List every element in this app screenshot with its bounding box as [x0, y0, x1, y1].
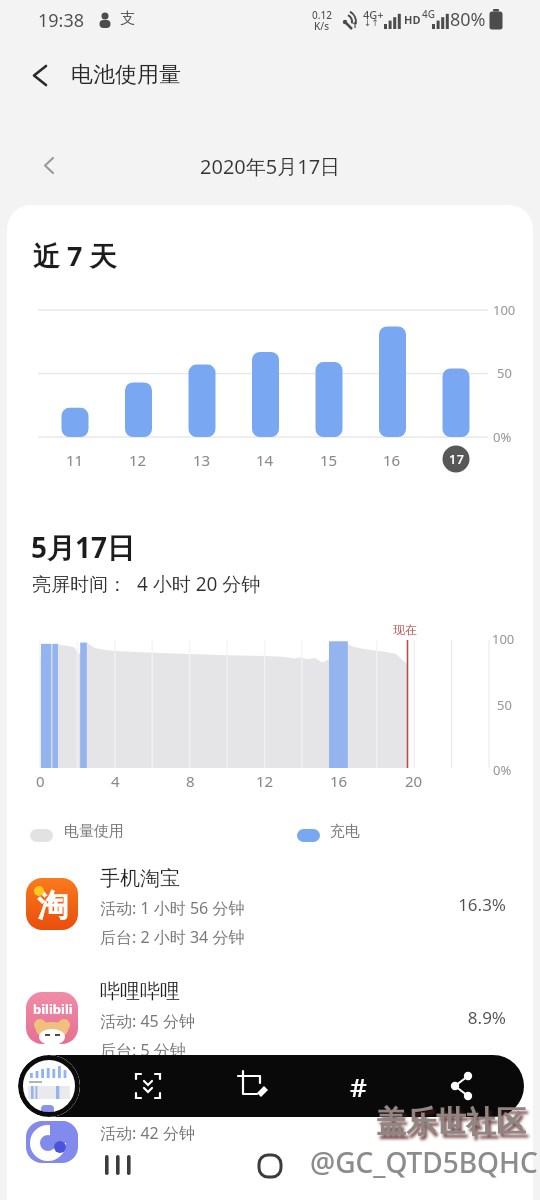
staticText: 5月17日 [31, 528, 136, 566]
staticText: HD [404, 12, 421, 27]
staticText: 2020年5月17日 [200, 153, 341, 180]
staticText: 1 [352, 18, 358, 30]
staticText: 手机淘宝 [100, 866, 180, 891]
staticText: 电池使用量 [71, 61, 181, 89]
staticText: 11 [66, 450, 84, 470]
staticText: 0 [36, 771, 45, 791]
staticText: 16.3% [458, 893, 506, 916]
button[interactable] [248, 1146, 292, 1186]
staticText: 13 [193, 450, 211, 470]
staticText: 20 [405, 771, 423, 791]
staticText: 近 7 天 [33, 237, 117, 274]
staticText: 100 [492, 630, 515, 648]
button[interactable] [126, 1064, 170, 1108]
button[interactable] [7, 975, 533, 1075]
staticText: 0.12 [312, 8, 332, 22]
button[interactable]: 2020年5月17日 [170, 150, 370, 182]
button[interactable] [32, 148, 68, 184]
staticText: 80% [450, 7, 486, 32]
button[interactable]: # [336, 1064, 380, 1108]
staticText: 活动: 1 小时 56 分钟 [100, 897, 245, 919]
staticText: 充电 [330, 822, 360, 841]
staticText: @GC_QTD5BQHC [310, 1143, 538, 1181]
staticText: 8 [186, 771, 195, 791]
staticText: 活动: 45 分钟 [100, 1010, 195, 1032]
staticText: 淘 [37, 886, 68, 925]
button[interactable] [18, 1055, 80, 1117]
button[interactable] [440, 1064, 484, 1108]
staticText: 8.9% [467, 1006, 506, 1029]
staticText: 16 [383, 450, 401, 470]
staticText: 50 [497, 364, 512, 382]
staticText: 4G+ [363, 7, 384, 22]
staticText: 支 [120, 9, 135, 28]
staticText: K/s [314, 19, 330, 33]
staticText: 哔哩哔哩 [100, 979, 180, 1004]
staticText: 电量使用 [64, 822, 124, 841]
staticText: 50 [497, 696, 512, 714]
staticText: 后台: 5 分钟 [100, 1039, 186, 1061]
staticText: # [350, 1069, 367, 1104]
staticText: 12 [256, 771, 274, 791]
staticText: 0% [493, 428, 512, 446]
staticText: ↓↑ [364, 18, 380, 28]
button[interactable] [95, 1146, 143, 1186]
staticText: 现在 [393, 622, 417, 637]
staticText: 后台: 2 小时 34 分钟 [100, 926, 245, 948]
staticText: 活动: 42 分钟 [100, 1122, 195, 1144]
staticText: 15 [320, 450, 338, 470]
staticText: 亮屏时间： 4 小时 20 分钟 [32, 571, 261, 597]
button[interactable] [230, 1064, 274, 1108]
button[interactable] [20, 58, 60, 94]
staticText: 4G [422, 7, 435, 21]
staticText: 盖乐世社区 [376, 1103, 526, 1141]
staticText: 0% [493, 761, 512, 779]
staticText: 14 [256, 450, 274, 470]
staticText: 100 [493, 301, 516, 319]
staticText: 17 [449, 450, 464, 468]
staticText: 19:38 [38, 8, 85, 33]
button[interactable] [7, 862, 533, 962]
staticText: bilibili [33, 1000, 73, 1018]
staticText: 4 [111, 771, 120, 791]
staticText: 12 [129, 450, 147, 470]
staticText: 16 [330, 771, 348, 791]
